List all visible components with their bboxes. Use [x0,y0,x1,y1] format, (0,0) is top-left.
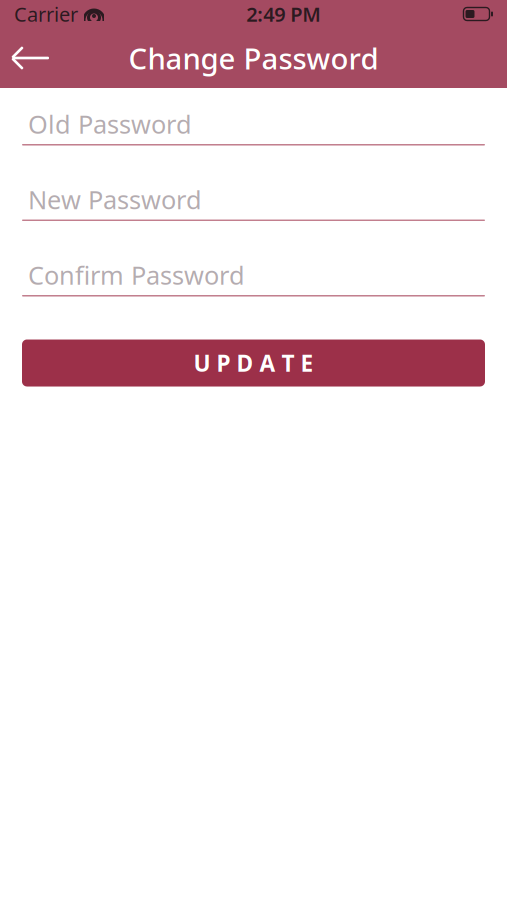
button[interactable]: Back [0,33,62,83]
staticText: U P D A T E [193,348,313,378]
staticText: Carrier [14,1,78,27]
staticText: New Password [28,183,202,216]
button[interactable]: U P D A T E [22,339,485,386]
staticText: Old Password [28,107,192,141]
staticText: Confirm Password [28,258,245,292]
staticText: 2:49 PM [246,1,321,27]
staticText: Change Password [128,38,378,77]
